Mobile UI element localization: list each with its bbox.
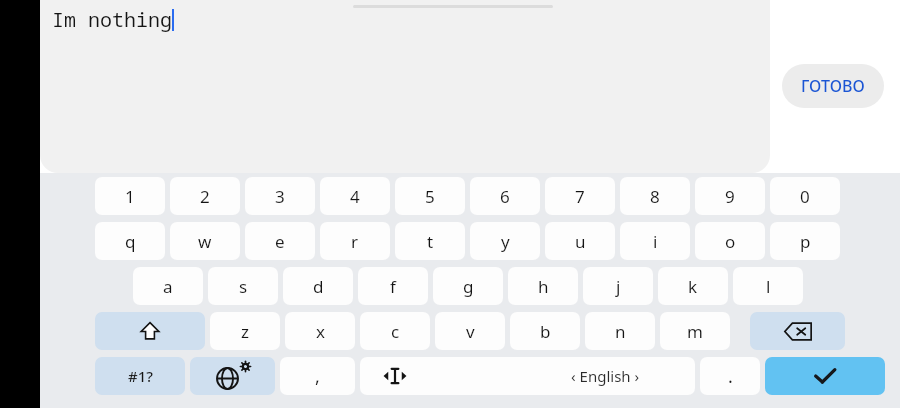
staticText: r	[351, 230, 359, 253]
button[interactable]: n	[585, 312, 655, 350]
button[interactable]: f	[358, 267, 428, 305]
staticText: w	[198, 230, 212, 253]
button[interactable]: z	[210, 312, 280, 350]
button[interactable]: p	[770, 222, 840, 260]
staticText: h	[538, 275, 549, 298]
staticText: z	[241, 320, 249, 343]
staticText: n	[615, 320, 626, 343]
button[interactable]: e	[245, 222, 315, 260]
staticText: y	[501, 230, 510, 253]
button[interactable]: l	[733, 267, 803, 305]
button[interactable]: u	[545, 222, 615, 260]
staticText: 0	[800, 185, 810, 208]
staticText: o	[725, 230, 736, 253]
button[interactable]: g	[433, 267, 503, 305]
button[interactable]: 3	[245, 177, 315, 215]
button[interactable]: o	[695, 222, 765, 260]
button[interactable]: Enter	[765, 357, 885, 395]
button[interactable]: w	[170, 222, 240, 260]
staticText: 7	[575, 185, 585, 208]
button[interactable]: i	[620, 222, 690, 260]
staticText: ‹ English ›	[571, 366, 640, 386]
button[interactable]: j	[583, 267, 653, 305]
staticText: k	[688, 275, 698, 298]
staticText: 3	[275, 185, 285, 208]
button[interactable]: t	[395, 222, 465, 260]
staticText: d	[313, 275, 324, 298]
button[interactable]: 4	[320, 177, 390, 215]
button[interactable]: b	[510, 312, 580, 350]
button[interactable]: #1?	[95, 357, 185, 395]
staticText: a	[163, 275, 173, 298]
staticText: s	[239, 275, 248, 298]
staticText: t	[427, 230, 434, 253]
staticText: p	[800, 230, 811, 253]
staticText: 4	[350, 185, 360, 208]
staticText: i	[653, 230, 658, 253]
button[interactable]: m	[660, 312, 730, 350]
button[interactable]: 8	[620, 177, 690, 215]
button[interactable]: k	[658, 267, 728, 305]
button[interactable]: 9	[695, 177, 765, 215]
button[interactable]: y	[470, 222, 540, 260]
button[interactable]: Im nothing	[40, 0, 770, 173]
button[interactable]: r	[320, 222, 390, 260]
staticText: .	[728, 364, 733, 389]
staticText: 8	[650, 185, 660, 208]
staticText: v	[466, 320, 475, 343]
button[interactable]: Change language	[190, 357, 275, 395]
staticText: 6	[500, 185, 510, 208]
staticText: x	[316, 320, 325, 343]
button[interactable]: x	[285, 312, 355, 350]
staticText: 9	[725, 185, 735, 208]
staticText: g	[463, 275, 474, 298]
button[interactable]: a	[133, 267, 203, 305]
button[interactable]: 5	[395, 177, 465, 215]
button[interactable]: 0	[770, 177, 840, 215]
button[interactable]: q	[95, 222, 165, 260]
button[interactable]: Shift	[95, 312, 205, 350]
staticText: b	[540, 320, 551, 343]
button[interactable]: c	[360, 312, 430, 350]
button[interactable]: 2	[170, 177, 240, 215]
staticText: 2	[200, 185, 210, 208]
button[interactable]: h	[508, 267, 578, 305]
button[interactable]: Space	[360, 357, 695, 395]
staticText: ГОТОВО	[801, 75, 865, 97]
button[interactable]: s	[208, 267, 278, 305]
staticText: j	[616, 275, 621, 298]
button[interactable]: 1	[95, 177, 165, 215]
staticText: 1	[125, 185, 135, 208]
staticText: u	[575, 230, 586, 253]
button[interactable]: 6	[470, 177, 540, 215]
staticText: 5	[425, 185, 435, 208]
button[interactable]: 7	[545, 177, 615, 215]
button[interactable]: d	[283, 267, 353, 305]
staticText: Im nothing	[52, 6, 172, 33]
staticText: q	[125, 230, 136, 253]
staticText: m	[687, 320, 703, 343]
staticText: #1?	[128, 366, 153, 386]
staticText: ,	[315, 364, 320, 389]
staticText: f	[390, 275, 396, 298]
button[interactable]: ,	[280, 357, 355, 395]
button[interactable]: .	[700, 357, 760, 395]
staticText: c	[391, 320, 400, 343]
staticText: e	[275, 230, 285, 253]
staticText: l	[766, 275, 771, 298]
button[interactable]: ГОТОВО	[782, 64, 884, 108]
button[interactable]: Backspace	[750, 312, 845, 350]
button[interactable]: v	[435, 312, 505, 350]
